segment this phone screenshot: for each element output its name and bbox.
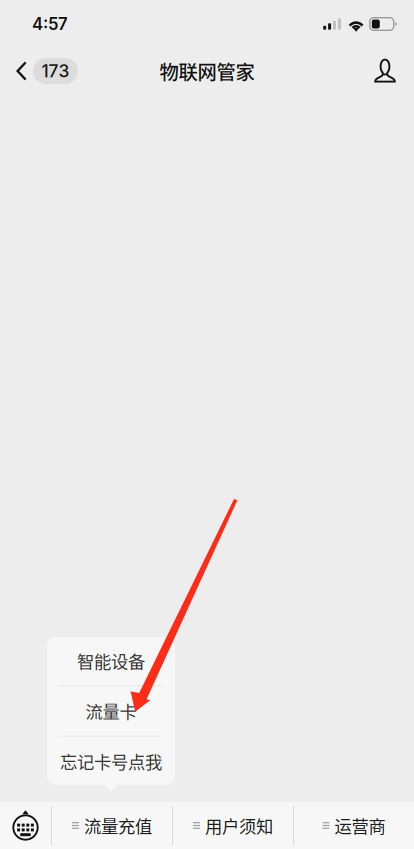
staticText: 流量充值 <box>84 813 152 838</box>
button[interactable]: 运营商 <box>294 802 414 849</box>
staticText: 4:57 <box>32 14 68 34</box>
button[interactable]: Keyboard <box>0 802 51 849</box>
staticText: 运营商 <box>334 813 385 838</box>
button[interactable]: Account <box>358 48 414 94</box>
staticText: 物联网管家 <box>159 57 254 85</box>
staticText: 173 <box>41 60 69 81</box>
button[interactable]: 流量充值 <box>52 802 172 849</box>
staticText: 忘记卡号点我 <box>60 749 162 774</box>
button[interactable]: 流量卡 <box>47 686 175 736</box>
button[interactable]: 忘记卡号点我 <box>47 737 175 786</box>
button[interactable]: 用户须知 <box>173 802 293 849</box>
staticText: 智能设备 <box>77 648 145 673</box>
button[interactable]: Back <box>0 48 88 94</box>
button[interactable]: 智能设备 <box>47 636 175 685</box>
staticText: 流量卡 <box>85 698 136 724</box>
staticText: 用户须知 <box>205 813 273 838</box>
